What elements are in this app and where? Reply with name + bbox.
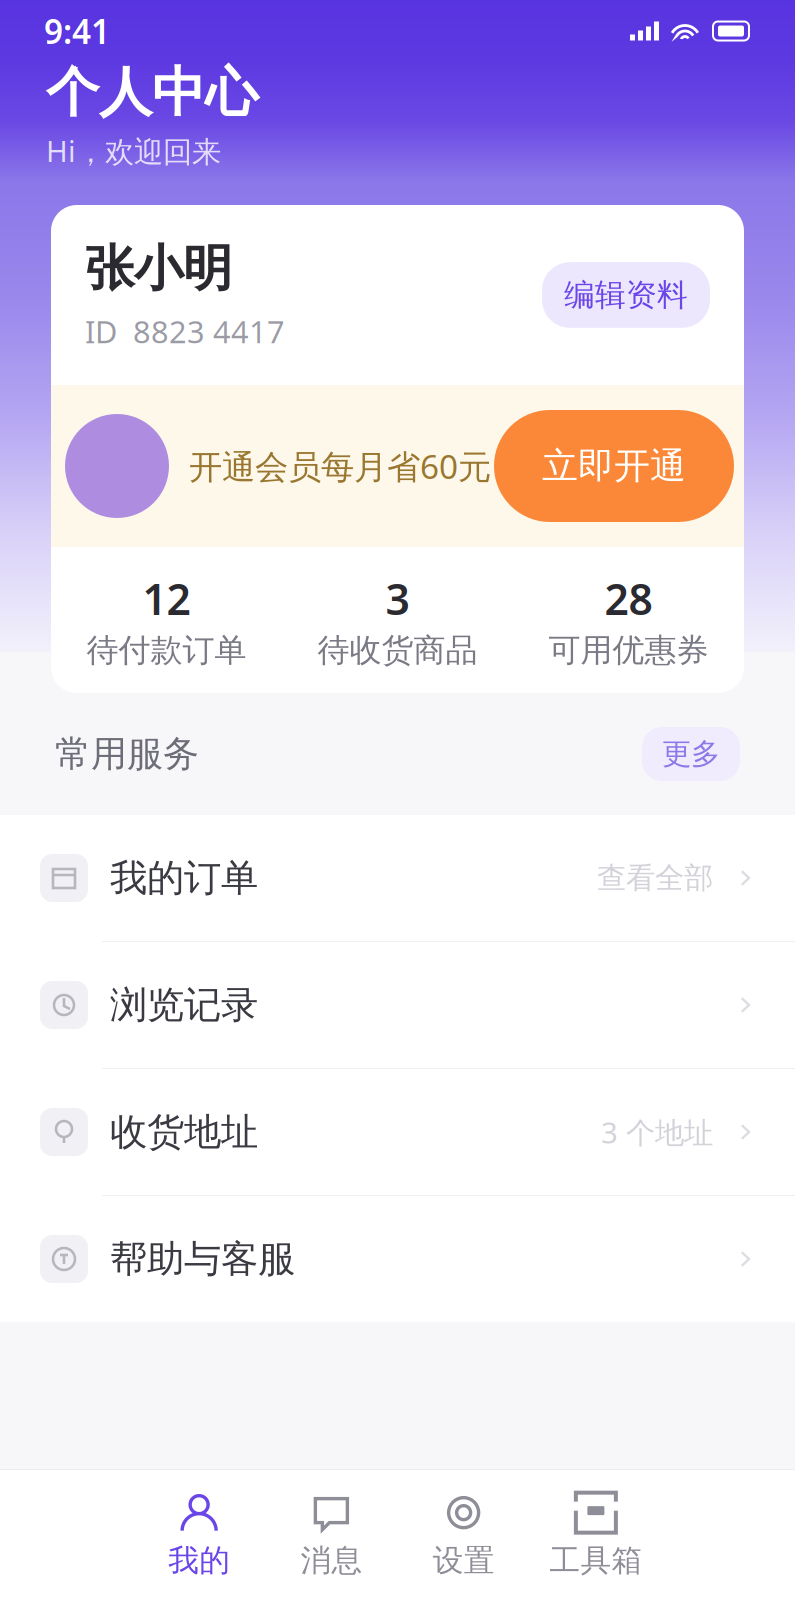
button[interactable]: 我的 (133, 1470, 265, 1600)
staticText: 9:41 (44, 9, 110, 53)
staticText: 28 (604, 570, 652, 627)
button[interactable]: 工具箱 (530, 1470, 662, 1600)
staticText: 开通会员每月省60元 (189, 444, 491, 488)
button[interactable]: 28 (513, 547, 744, 693)
button[interactable]: 更多 (642, 727, 740, 781)
button[interactable]: 浏览记录 (0, 942, 795, 1069)
button[interactable]: 设置 (397, 1470, 530, 1600)
staticText: 帮助与客服 (110, 1236, 295, 1282)
staticText: 待付款订单 (86, 631, 246, 670)
staticText: 3 个地址 (601, 1112, 713, 1151)
staticText: 工具箱 (549, 1542, 642, 1579)
staticText: 12 (142, 570, 190, 627)
staticText: 更多 (662, 736, 720, 772)
staticText: 编辑资料 (564, 276, 688, 314)
staticText: Hi，欢迎回来 (46, 131, 221, 170)
staticText: 可用优惠券 (548, 631, 708, 670)
button[interactable]: 3 (282, 547, 513, 693)
staticText: 收货地址 (110, 1109, 258, 1155)
staticText: ID 8823 4417 (85, 311, 285, 352)
button[interactable]: 我的订单 (0, 815, 795, 942)
button[interactable]: 收货地址 (0, 1069, 795, 1196)
button[interactable]: 编辑资料 (542, 262, 710, 328)
staticText: 常用服务 (55, 732, 199, 776)
staticText: 我的 (168, 1542, 230, 1579)
staticText: 查看全部 (597, 860, 713, 896)
staticText: 个人中心 (46, 60, 258, 125)
button[interactable]: 帮助与客服 (0, 1196, 795, 1322)
staticText: 我的订单 (110, 855, 258, 901)
staticText: 立即开通 (542, 444, 686, 488)
staticText: 浏览记录 (110, 982, 258, 1028)
staticText: 待收货商品 (317, 631, 477, 670)
staticText: 消息 (300, 1542, 362, 1579)
button[interactable]: 12 (51, 547, 282, 693)
staticText: 设置 (433, 1542, 495, 1579)
button[interactable]: 立即开通 (494, 410, 734, 522)
staticText: 3 (385, 570, 409, 627)
staticText: 张小明 (85, 238, 232, 299)
button[interactable]: 消息 (265, 1470, 397, 1600)
